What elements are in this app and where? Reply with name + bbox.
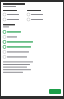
- button[interactable]: [3, 49, 61, 54]
- button[interactable]: [27, 18, 43, 21]
- button[interactable]: [3, 34, 61, 39]
- button[interactable]: [3, 39, 61, 44]
- button[interactable]: [3, 18, 19, 21]
- button[interactable]: [3, 13, 19, 16]
- button[interactable]: [27, 13, 43, 16]
- button[interactable]: [3, 54, 61, 59]
- button[interactable]: [3, 44, 61, 49]
- button[interactable]: Save: [49, 89, 61, 94]
- button[interactable]: [3, 29, 61, 34]
